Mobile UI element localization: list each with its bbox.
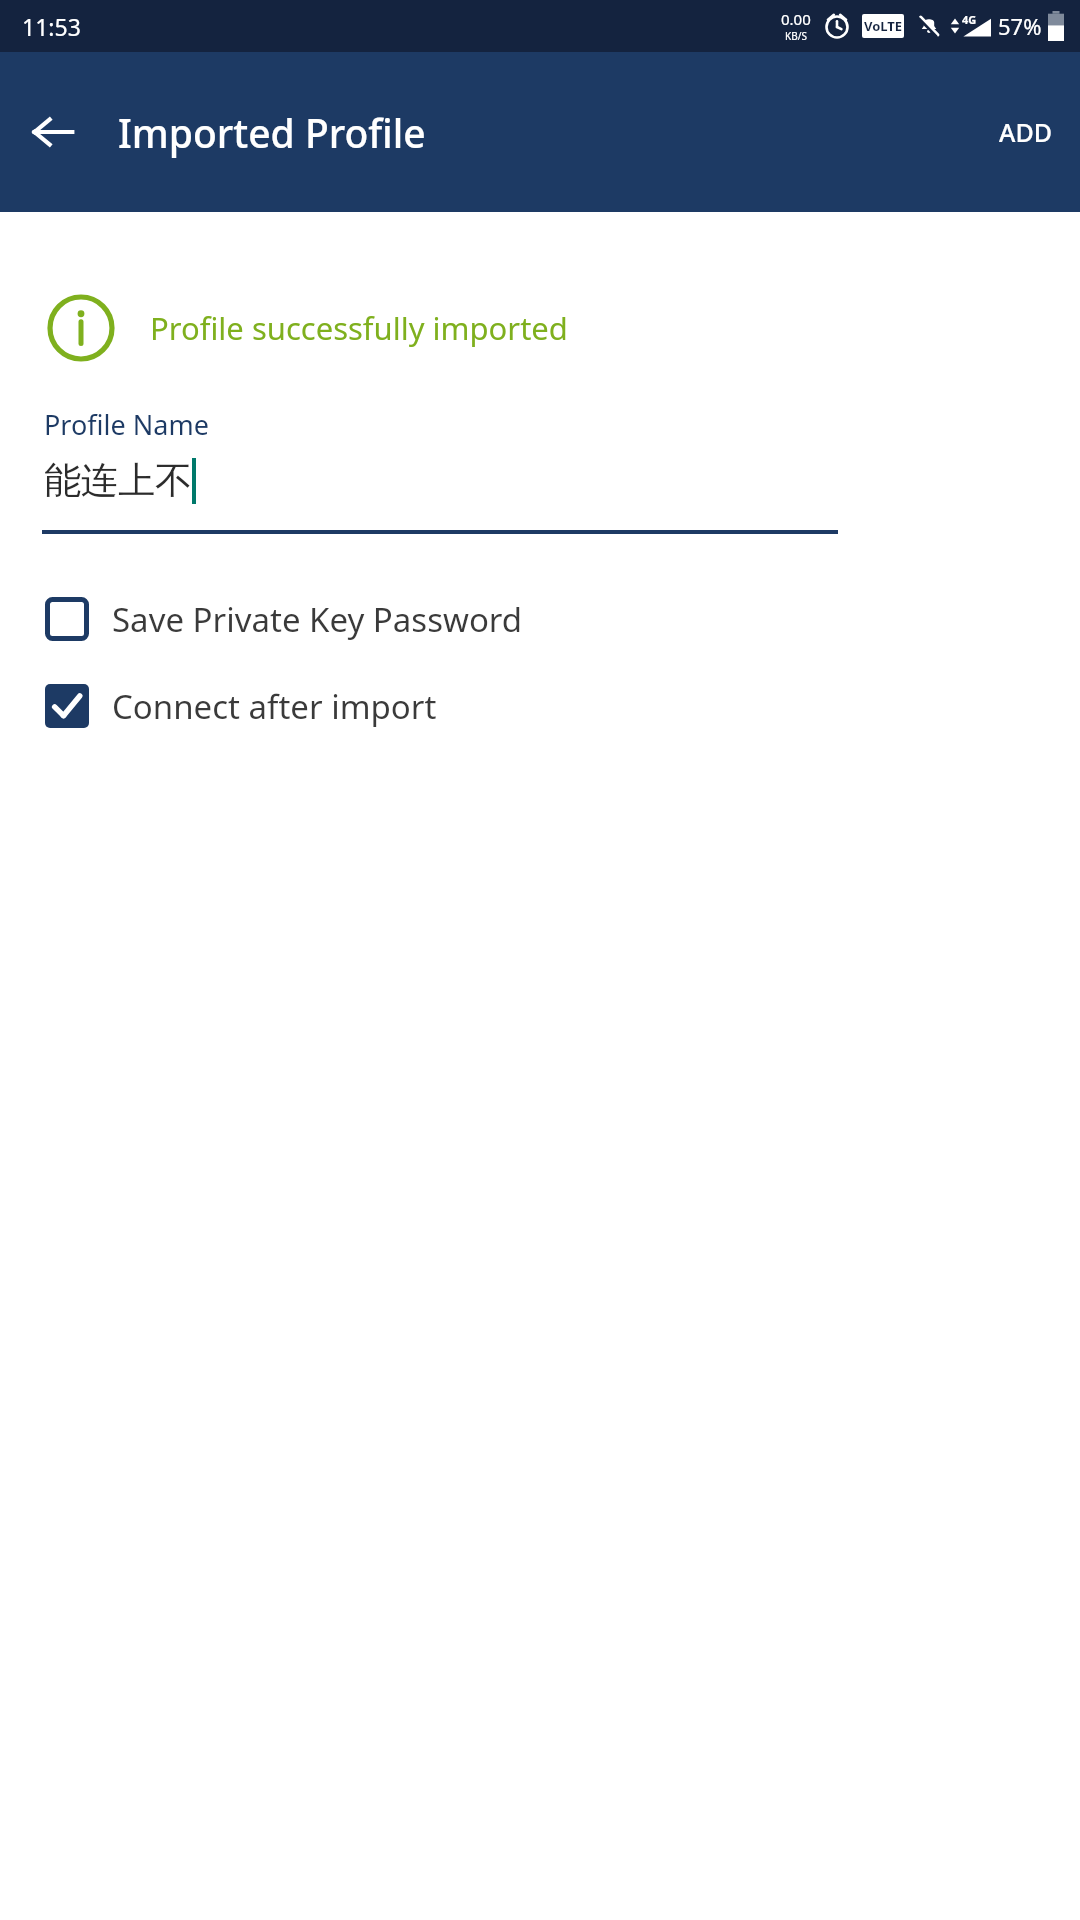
button[interactable]: Connect after import <box>0 677 1080 735</box>
button[interactable]: 能连上不 <box>0 457 1080 504</box>
staticText: Profile Name <box>44 406 209 443</box>
button[interactable]: Back <box>22 101 84 163</box>
staticText: VoLTE <box>864 17 903 35</box>
staticText: 4G <box>962 12 977 27</box>
staticText: Connect after import <box>112 684 437 729</box>
staticText: ADD <box>999 115 1052 149</box>
staticText: KB/S <box>785 29 807 43</box>
staticText: 能连上不 <box>44 457 192 504</box>
staticText: 11:53 <box>22 11 81 42</box>
button[interactable]: Save Private Key Password <box>0 590 1080 648</box>
staticText: 0.00 <box>781 9 811 29</box>
staticText: 57% <box>998 11 1042 41</box>
staticText: Imported Profile <box>118 106 426 159</box>
button[interactable]: ADD <box>971 52 1080 212</box>
staticText: Save Private Key Password <box>112 597 523 642</box>
staticText: Profile successfully imported <box>150 307 568 349</box>
